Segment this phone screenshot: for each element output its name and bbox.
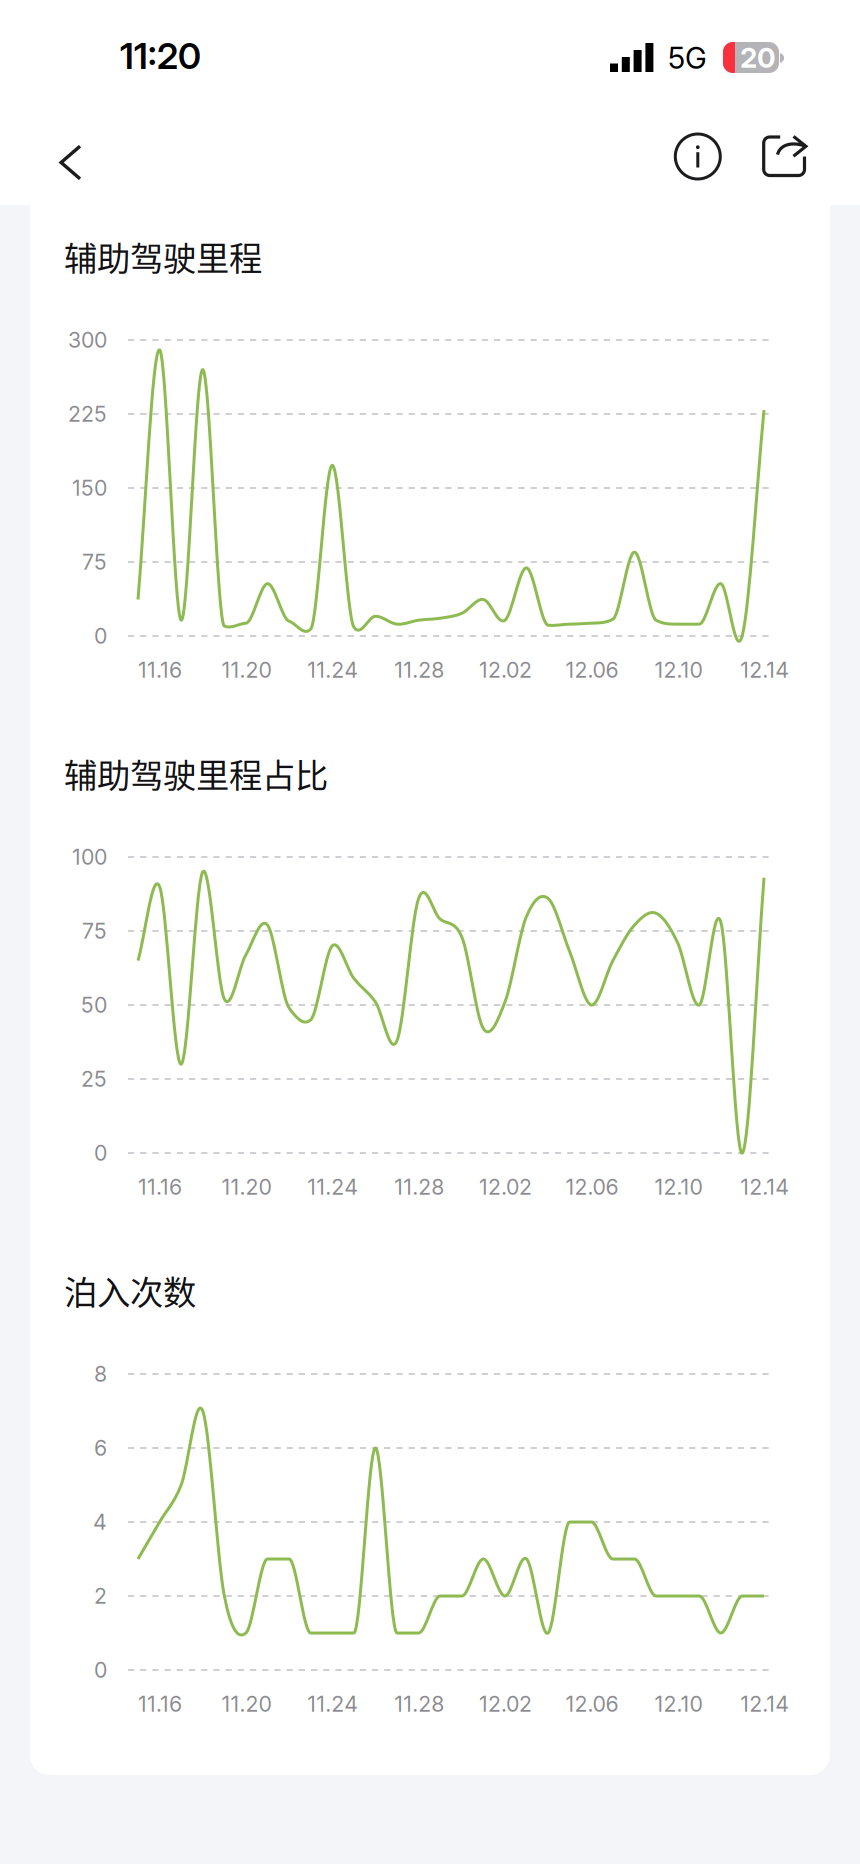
- staticText: 11.16: [138, 1691, 182, 1717]
- staticText: 12.02: [479, 1691, 532, 1717]
- staticText: 20: [740, 41, 776, 74]
- staticText: 0: [94, 1657, 107, 1683]
- staticText: 2: [94, 1583, 107, 1609]
- staticText: 25: [81, 1066, 107, 1092]
- staticText: 11.28: [394, 657, 444, 683]
- staticText: 11.24: [307, 1691, 358, 1717]
- staticText: 50: [81, 992, 107, 1018]
- staticText: 11.16: [138, 657, 182, 683]
- staticText: 12.02: [479, 1174, 532, 1200]
- staticText: 泊入次数: [64, 1266, 196, 1314]
- staticText: 12.10: [654, 1691, 702, 1717]
- staticText: 12.06: [565, 1691, 618, 1717]
- staticText: 75: [82, 549, 107, 575]
- staticText: 0: [94, 1140, 107, 1166]
- staticText: 12.10: [654, 657, 702, 683]
- staticText: 5G: [668, 40, 707, 76]
- staticText: 12.06: [565, 657, 618, 683]
- staticText: 75: [82, 918, 107, 944]
- button[interactable]: Back: [46, 104, 132, 192]
- staticText: 8: [94, 1361, 107, 1387]
- staticText: 12.14: [740, 1691, 789, 1717]
- staticText: 300: [68, 327, 107, 353]
- staticText: 12.06: [565, 1174, 618, 1200]
- staticText: 6: [94, 1435, 107, 1461]
- staticText: 11.20: [221, 657, 271, 683]
- staticText: 12.14: [740, 1174, 789, 1200]
- staticText: 11.28: [394, 1691, 444, 1717]
- staticText: 4: [93, 1509, 107, 1535]
- staticText: 11.20: [221, 1691, 271, 1717]
- staticText: 12.02: [479, 657, 532, 683]
- button[interactable]: Info: [654, 104, 742, 192]
- staticText: 11.28: [394, 1174, 444, 1200]
- staticText: 11:20: [120, 34, 201, 78]
- staticText: 辅助驾驶里程: [64, 232, 262, 280]
- staticText: 12.14: [740, 657, 789, 683]
- staticText: 0: [94, 623, 107, 649]
- staticText: 150: [72, 475, 107, 501]
- staticText: 225: [68, 401, 107, 427]
- staticText: 12.10: [654, 1174, 702, 1200]
- staticText: 辅助驾驶里程占比: [64, 749, 328, 797]
- staticText: 11.16: [138, 1174, 182, 1200]
- button[interactable]: Share: [750, 104, 838, 192]
- staticText: 11.24: [307, 657, 358, 683]
- staticText: 11.24: [307, 1174, 358, 1200]
- staticText: 11.20: [221, 1174, 271, 1200]
- staticText: 100: [72, 844, 107, 870]
